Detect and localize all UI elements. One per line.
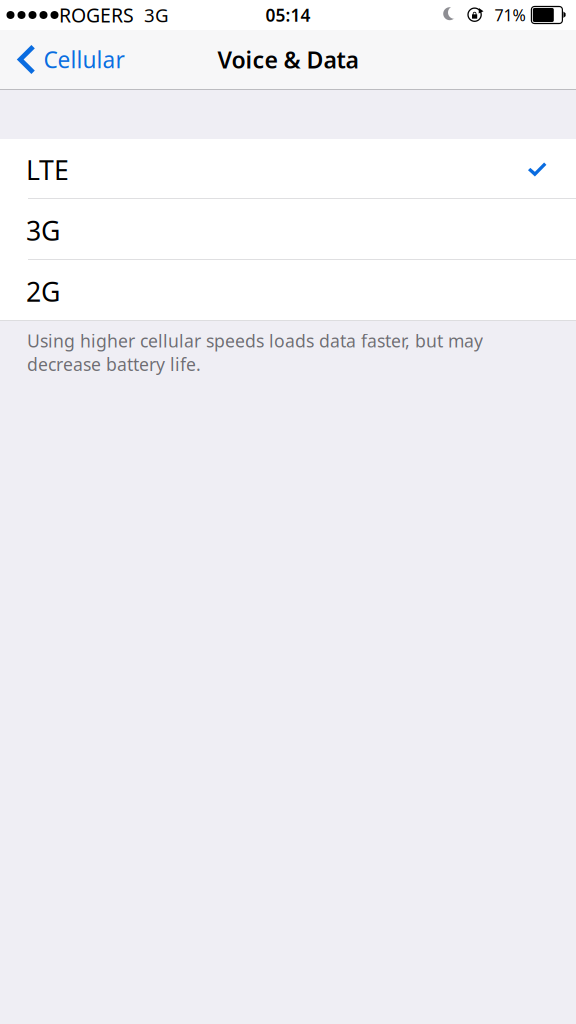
button[interactable]: Back to Cellular (0, 30, 136, 89)
staticText: 71% (494, 4, 525, 26)
staticText: 3G (26, 213, 60, 248)
staticText: LTE (26, 152, 69, 188)
staticText: ROGERS (59, 2, 134, 28)
staticText: Using higher cellular speeds loads data … (27, 329, 483, 376)
staticText: 3G (144, 3, 169, 27)
staticText: Cellular (43, 44, 124, 74)
staticText: 2G (26, 274, 60, 309)
button[interactable]: 3G (0, 199, 576, 259)
button[interactable]: LTE (0, 139, 576, 198)
staticText: 05:14 (265, 3, 310, 26)
button[interactable]: 2G (0, 260, 576, 320)
staticText: Voice & Data (217, 44, 358, 75)
